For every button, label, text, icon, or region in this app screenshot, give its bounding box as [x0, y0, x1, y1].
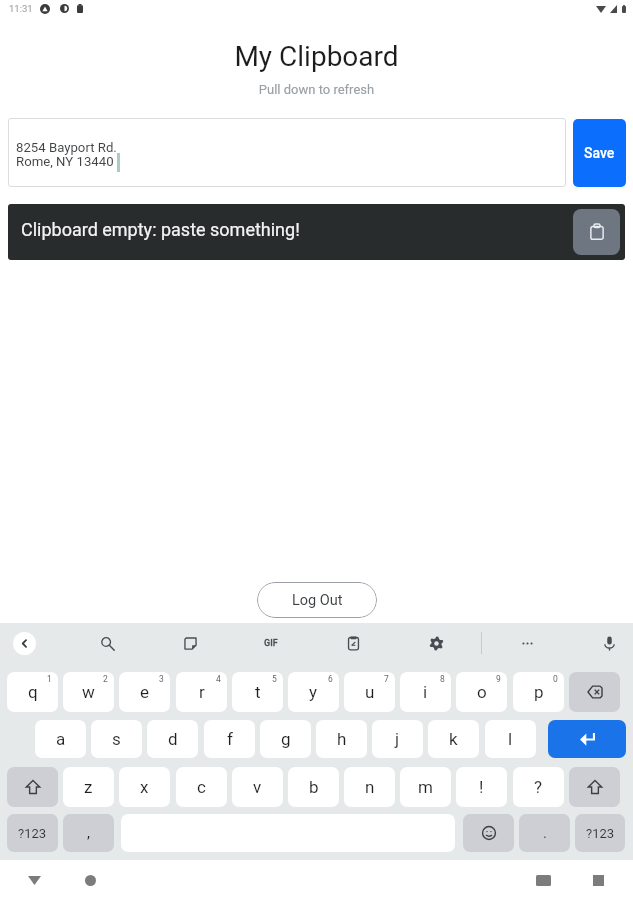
- staticText: o: [477, 682, 487, 702]
- staticText: Log Out: [292, 592, 343, 609]
- button[interactable]: Shift: [569, 767, 620, 807]
- staticText: l: [508, 729, 513, 749]
- button[interactable]: a: [35, 720, 86, 758]
- button[interactable]: ?123: [7, 814, 58, 852]
- staticText: u: [365, 682, 375, 702]
- button[interactable]: p: [513, 672, 564, 712]
- button[interactable]: q: [7, 672, 58, 712]
- staticText: i: [423, 682, 428, 702]
- staticText: !: [479, 777, 484, 797]
- button[interactable]: x: [119, 767, 170, 807]
- button[interactable]: Shift: [7, 767, 58, 807]
- staticText: n: [365, 777, 375, 797]
- staticText: ?: [534, 777, 543, 797]
- button[interactable]: r: [176, 672, 227, 712]
- staticText: Pull down to refresh: [0, 82, 633, 97]
- button[interactable]: t: [232, 672, 283, 712]
- staticText: c: [197, 777, 206, 797]
- button[interactable]: v: [232, 767, 283, 807]
- staticText: d: [168, 729, 178, 749]
- staticText: v: [253, 777, 262, 797]
- button[interactable]: GIF: [258, 630, 284, 656]
- button[interactable]: Settings: [423, 630, 449, 656]
- staticText: ?123: [18, 826, 47, 841]
- staticText: 2: [103, 674, 108, 684]
- staticText: y: [309, 682, 318, 702]
- button[interactable]: g: [260, 720, 311, 758]
- staticText: h: [337, 729, 347, 749]
- button[interactable]: e: [119, 672, 170, 712]
- staticText: 8254 Bayport Rd.: [16, 140, 117, 155]
- button[interactable]: ?123: [575, 814, 625, 852]
- button[interactable]: l: [485, 720, 536, 758]
- button[interactable]: c: [176, 767, 227, 807]
- button[interactable]: i: [400, 672, 451, 712]
- staticText: 1: [47, 674, 52, 684]
- staticText: 6: [328, 674, 333, 684]
- staticText: .: [543, 824, 547, 842]
- staticText: 7: [384, 674, 389, 684]
- staticText: 11:31: [9, 3, 33, 14]
- staticText: 0: [553, 674, 558, 684]
- staticText: a: [56, 729, 66, 749]
- button[interactable]: Log Out: [257, 582, 377, 618]
- staticText: m: [418, 777, 433, 797]
- button[interactable]: u: [344, 672, 395, 712]
- button[interactable]: .: [519, 814, 570, 852]
- button[interactable]: Clipboard: [340, 630, 366, 656]
- staticText: w: [82, 682, 95, 702]
- staticText: x: [140, 777, 149, 797]
- button[interactable]: d: [147, 720, 198, 758]
- button[interactable]: Paste from clipboard: [573, 209, 620, 255]
- button[interactable]: Voice input: [596, 630, 622, 656]
- button[interactable]: h: [316, 720, 367, 758]
- staticText: 8: [440, 674, 445, 684]
- button[interactable]: z: [63, 767, 114, 807]
- button[interactable]: Emoji: [463, 814, 514, 852]
- staticText: Rome, NY 13440: [16, 154, 114, 169]
- button[interactable]: y: [288, 672, 339, 712]
- staticText: s: [112, 729, 121, 749]
- button[interactable]: Sticker: [177, 630, 203, 656]
- staticText: Save: [584, 145, 615, 161]
- button[interactable]: Recent apps: [586, 868, 610, 892]
- staticText: ,: [87, 824, 90, 842]
- button[interactable]: f: [204, 720, 255, 758]
- button[interactable]: Switch keyboard: [531, 868, 555, 892]
- button[interactable]: Home: [78, 868, 102, 892]
- button[interactable]: Back: [22, 868, 46, 892]
- staticText: f: [227, 729, 233, 749]
- staticText: p: [534, 682, 544, 702]
- staticText: z: [84, 777, 93, 797]
- button[interactable]: b: [288, 767, 339, 807]
- staticText: 9: [496, 674, 501, 684]
- button[interactable]: ,: [63, 814, 114, 852]
- button[interactable]: Backspace: [569, 672, 620, 712]
- staticText: t: [255, 682, 261, 702]
- button[interactable]: s: [91, 720, 142, 758]
- staticText: My Clipboard: [0, 40, 633, 73]
- button[interactable]: !: [456, 767, 507, 807]
- button[interactable]: Save: [573, 119, 626, 187]
- button[interactable]: n: [344, 767, 395, 807]
- staticText: b: [309, 777, 319, 797]
- staticText: e: [140, 682, 150, 702]
- staticText: 3: [159, 674, 164, 684]
- button[interactable]: k: [428, 720, 479, 758]
- button[interactable]: j: [372, 720, 423, 758]
- staticText: 5: [272, 674, 277, 684]
- button[interactable]: m: [400, 767, 451, 807]
- button[interactable]: w: [63, 672, 114, 712]
- button[interactable]: Search: [94, 630, 120, 656]
- button[interactable]: 8254 Bayport Rd.: [8, 118, 566, 187]
- button[interactable]: ?: [513, 767, 564, 807]
- staticText: 4: [216, 674, 221, 684]
- button[interactable]: More options: [514, 630, 540, 656]
- staticText: ?123: [586, 826, 615, 841]
- staticText: g: [281, 729, 291, 749]
- button[interactable]: Enter: [548, 720, 626, 758]
- button[interactable]: Hide toolbar: [13, 632, 36, 655]
- staticText: q: [28, 682, 38, 702]
- button[interactable]: o: [456, 672, 507, 712]
